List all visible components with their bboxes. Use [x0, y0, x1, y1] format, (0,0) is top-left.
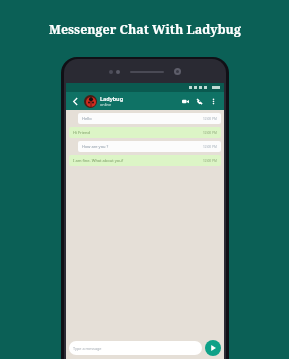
staticText: 12:00 PM: [203, 131, 217, 135]
button[interactable]: Type a message: [73, 341, 198, 355]
button[interactable]: Call: [192, 94, 206, 108]
staticText: Messenger Chat With Ladybug: [49, 21, 241, 38]
staticText: online: [100, 102, 112, 107]
button[interactable]: How are you ?: [82, 144, 217, 149]
staticText: Hi Friend: [73, 130, 90, 135]
button[interactable]: Send: [205, 340, 221, 356]
staticText: Hello: [82, 116, 92, 121]
button[interactable]: More options: [206, 94, 220, 108]
staticText: I am fine. What about you?: [73, 158, 124, 163]
button[interactable]: Hello: [82, 116, 217, 121]
staticText: 12:00 PM: [203, 145, 217, 149]
staticText: How are you ?: [82, 144, 109, 149]
staticText: Ladybug: [100, 95, 124, 102]
staticText: Type a message: [73, 346, 102, 351]
button[interactable]: I am fine. What about you?: [73, 158, 217, 163]
staticText: 12:00 PM: [203, 117, 217, 121]
button[interactable]: Back: [70, 95, 82, 107]
button[interactable]: Hi Friend: [73, 130, 217, 135]
button[interactable]: Video call: [178, 94, 192, 108]
button[interactable]: Ladybug: [100, 95, 178, 107]
staticText: 12:00 PM: [203, 159, 217, 163]
